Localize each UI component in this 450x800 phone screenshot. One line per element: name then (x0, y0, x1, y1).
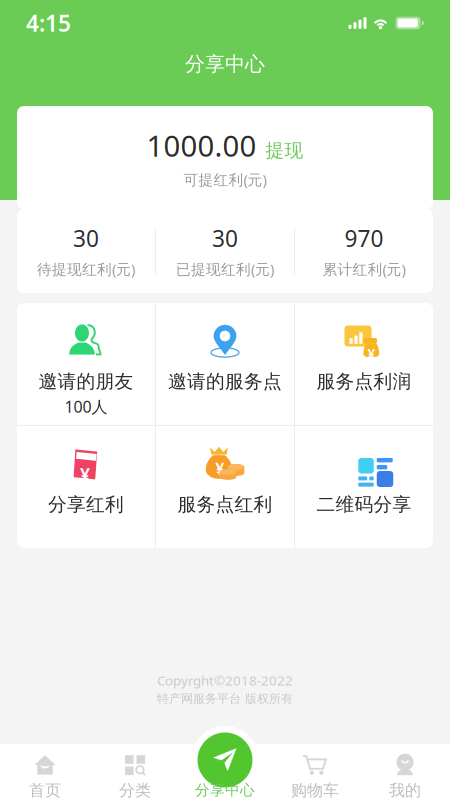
staticText: Copyrght©2018-2022 (157, 672, 293, 689)
staticText: 分类 (119, 781, 151, 800)
button[interactable]: 提现 (265, 139, 303, 162)
staticText: 邀请的服务点 (168, 370, 282, 393)
staticText: 分享红利 (48, 493, 124, 516)
staticText: 4:15 (26, 8, 71, 38)
staticText: 我的 (389, 781, 421, 800)
button[interactable]: 邀请的服务点 (156, 303, 294, 425)
button[interactable]: 购物车 (270, 744, 360, 800)
button[interactable]: 我的 (360, 744, 450, 800)
staticText: 可提红利(元) (183, 170, 266, 189)
staticText: 服务点利润 (316, 370, 411, 393)
button[interactable]: 邀请的朋友 (17, 303, 155, 425)
staticText: 购物车 (291, 781, 339, 800)
button[interactable]: 首页 (0, 744, 90, 800)
staticText: 1000.00 (146, 126, 256, 165)
staticText: 服务点红利 (177, 493, 272, 516)
staticText: ¥ (368, 345, 376, 363)
staticText: 待提现红利(元) (37, 259, 135, 279)
staticText: 已提现红利(元) (176, 259, 274, 279)
staticText: 30 (212, 223, 238, 253)
staticText: 分享中心 (185, 52, 265, 76)
staticText: ¥ (80, 463, 90, 486)
staticText: 100人 (64, 396, 107, 417)
button[interactable]: ¥ (295, 303, 433, 425)
staticText: 特产网服务平台 版权所有 (157, 691, 293, 706)
button[interactable]: 二维码分享 (295, 426, 433, 548)
button[interactable]: 30 (17, 209, 155, 293)
staticText: ¥ (215, 458, 224, 479)
staticText: 累计红利(元) (322, 259, 405, 279)
button[interactable]: 970 (295, 209, 433, 293)
button[interactable]: 分享中心 (180, 744, 270, 800)
button[interactable]: ¥ (17, 426, 155, 548)
button[interactable]: 30 (156, 209, 294, 293)
staticText: 首页 (29, 781, 61, 800)
staticText: 邀请的朋友 (38, 370, 133, 393)
staticText: 30 (73, 223, 99, 253)
button[interactable]: ¥ (156, 426, 294, 548)
staticText: 二维码分享 (316, 493, 411, 516)
staticText: 提现 (265, 139, 303, 162)
staticText: 970 (344, 223, 383, 253)
staticText: 分享中心 (195, 781, 255, 799)
button[interactable]: 分类 (90, 744, 180, 800)
